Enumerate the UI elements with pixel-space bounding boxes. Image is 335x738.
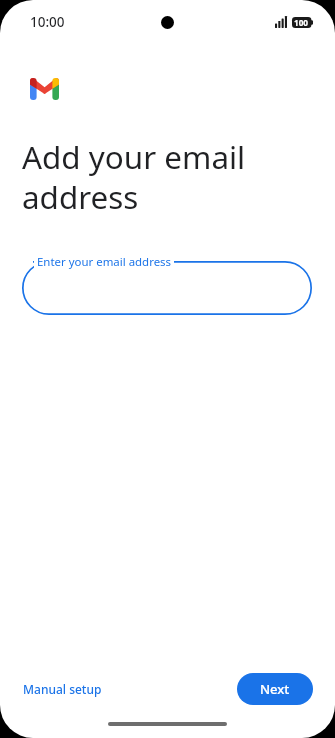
staticText: Manual setup bbox=[23, 681, 102, 697]
staticText: Add your email address bbox=[22, 135, 246, 218]
staticText: 100 bbox=[294, 17, 309, 28]
staticText: 10:00 bbox=[30, 13, 65, 31]
button[interactable]: Next bbox=[237, 673, 313, 705]
staticText: Next bbox=[260, 680, 290, 698]
staticText: Enter your email address bbox=[37, 254, 172, 270]
button[interactable]: Manual setup bbox=[13, 675, 112, 703]
